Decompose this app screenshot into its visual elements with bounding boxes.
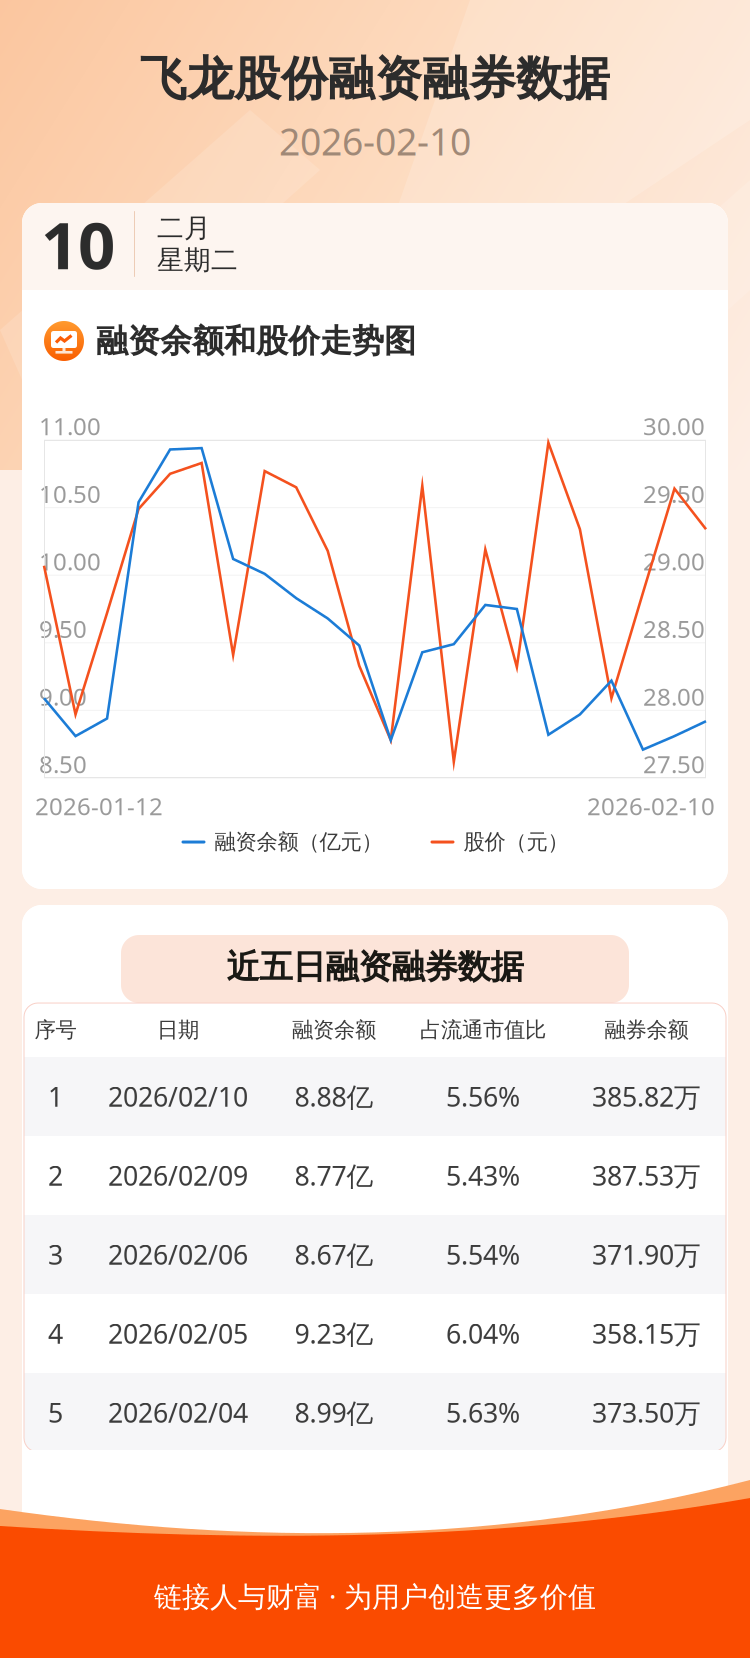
staticText: 11.00 <box>39 410 101 442</box>
staticText: 373.50万 <box>592 1395 701 1430</box>
staticText: 2 <box>48 1158 63 1193</box>
staticText: 10 <box>41 201 115 287</box>
staticText: 29.00 <box>643 545 705 577</box>
staticText: 占流通市值比 <box>420 1017 546 1043</box>
staticText: 29.50 <box>643 478 705 510</box>
staticText: 股价（元） <box>463 829 568 855</box>
staticText: 4 <box>48 1316 63 1351</box>
staticText: 2026-02-10 <box>279 116 471 166</box>
staticText: 2026/02/05 <box>108 1316 248 1351</box>
staticText: 9.50 <box>39 613 87 645</box>
staticText: 9.00 <box>39 680 87 712</box>
staticText: 387.53万 <box>592 1158 701 1193</box>
staticText: 5.43% <box>446 1158 520 1193</box>
staticText: 8.50 <box>39 748 87 780</box>
staticText: 5 <box>48 1395 63 1430</box>
staticText: 8.88亿 <box>294 1079 373 1114</box>
staticText: 2026/02/06 <box>108 1237 248 1272</box>
staticText: 385.82万 <box>592 1079 701 1114</box>
staticText: 28.00 <box>643 680 705 712</box>
staticText: 融资余额 <box>292 1017 376 1043</box>
staticText: 2026/02/09 <box>108 1158 248 1193</box>
staticText: 358.15万 <box>592 1316 701 1351</box>
staticText: 9.23亿 <box>294 1316 373 1351</box>
staticText: 1 <box>48 1079 63 1114</box>
staticText: 链接人与财富 · 为用户创造更多价值 <box>154 1577 596 1615</box>
staticText: 二月 <box>157 212 211 244</box>
staticText: 3 <box>48 1237 63 1272</box>
staticText: 5.56% <box>446 1079 520 1114</box>
staticText: 30.00 <box>643 410 705 442</box>
staticText: 27.50 <box>643 748 705 780</box>
staticText: 融资余额和股价走势图 <box>96 321 416 361</box>
staticText: 5.63% <box>446 1395 520 1430</box>
staticText: 融资余额（亿元） <box>214 829 382 855</box>
staticText: 10.00 <box>39 545 101 577</box>
staticText: 近五日融资融券数据 <box>226 946 523 987</box>
staticText: 5.54% <box>446 1237 520 1272</box>
staticText: 8.67亿 <box>294 1237 373 1272</box>
staticText: 371.90万 <box>592 1237 701 1272</box>
staticText: 2026-02-10 <box>587 790 715 822</box>
staticText: 2026-01-12 <box>35 790 163 822</box>
staticText: 2026/02/04 <box>108 1395 248 1430</box>
staticText: 日期 <box>157 1017 199 1043</box>
staticText: 2026/02/10 <box>108 1079 248 1114</box>
staticText: 融券余额 <box>604 1017 688 1043</box>
staticText: 10.50 <box>39 478 101 510</box>
staticText: 飞龙股份融资融券数据 <box>140 50 610 108</box>
staticText: 6.04% <box>446 1316 520 1351</box>
staticText: 星期二 <box>157 244 238 276</box>
staticText: 序号 <box>34 1017 76 1043</box>
staticText: 8.99亿 <box>294 1395 373 1430</box>
staticText: 8.77亿 <box>294 1158 373 1193</box>
staticText: 28.50 <box>643 613 705 645</box>
